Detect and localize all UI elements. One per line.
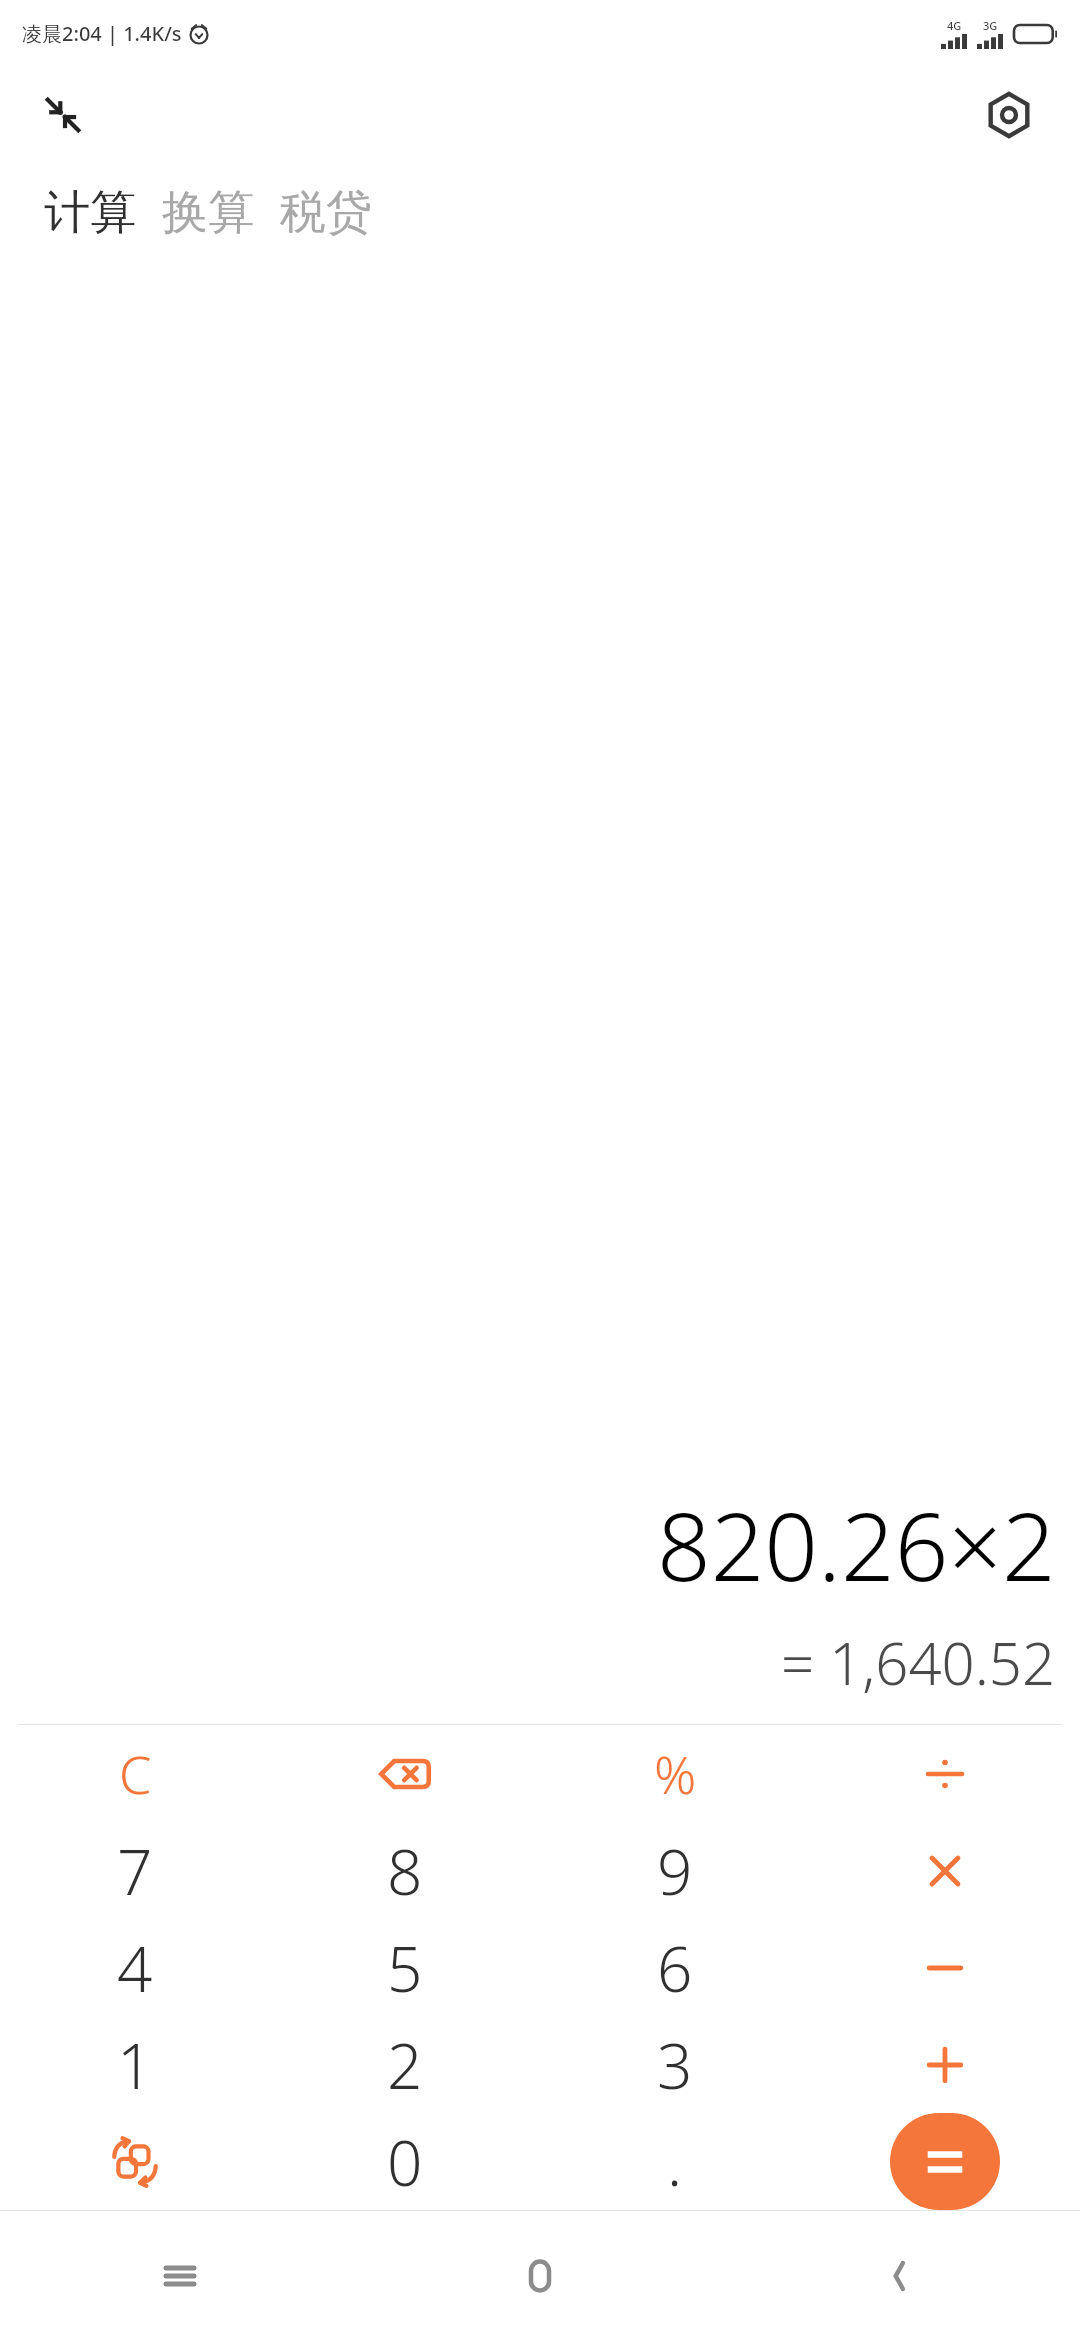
staticText: % [654, 1738, 697, 1809]
staticText: 4G [947, 18, 962, 33]
button[interactable]: Collapse [34, 86, 92, 144]
staticText: . [667, 2120, 683, 2204]
staticText: 5 [387, 1926, 423, 2010]
button[interactable]: 7 [0, 1822, 270, 1919]
button[interactable]: Recents [0, 2211, 360, 2340]
button[interactable]: Home [360, 2211, 720, 2340]
button[interactable]: C [0, 1725, 270, 1822]
staticText: 计算 [44, 184, 136, 242]
staticText: 税贷 [280, 184, 372, 242]
staticText: 凌晨2:04 | 1.4K/s [22, 20, 182, 47]
button[interactable]: 8 [270, 1822, 540, 1919]
staticText: 3G [983, 18, 998, 33]
button[interactable]: Minus [810, 1919, 1080, 2016]
button[interactable]: Backspace [270, 1725, 540, 1822]
staticText: 4 [117, 1926, 153, 2010]
button[interactable]: Equals [810, 2113, 1080, 2210]
staticText: 0 [387, 2120, 423, 2204]
button[interactable]: 5 [270, 1919, 540, 2016]
staticText: 7 [117, 1829, 153, 1913]
staticText: 6 [657, 1926, 693, 2010]
staticText: 2 [387, 2023, 423, 2107]
button[interactable]: 1 [0, 2016, 270, 2113]
button[interactable]: % [540, 1725, 810, 1822]
button[interactable]: 税贷 [280, 178, 372, 248]
staticText: C [119, 1738, 152, 1809]
button[interactable]: 2 [270, 2016, 540, 2113]
button[interactable]: 0 [270, 2113, 540, 2210]
button[interactable]: 计算 [44, 178, 136, 248]
button[interactable]: 换算 [162, 178, 254, 248]
button[interactable]: . [540, 2113, 810, 2210]
staticText: 9 [657, 1829, 693, 1913]
button[interactable]: Back [720, 2211, 1080, 2340]
button[interactable]: Convert [0, 2113, 270, 2210]
button[interactable]: 3 [540, 2016, 810, 2113]
button[interactable]: 4 [0, 1919, 270, 2016]
button[interactable]: Plus [810, 2016, 1080, 2113]
button[interactable]: Settings [978, 84, 1040, 146]
staticText: 820.26×2 [657, 1481, 1056, 1609]
button[interactable]: 6 [540, 1919, 810, 2016]
button[interactable]: Divide [810, 1725, 1080, 1822]
staticText: = 1,640.52 [781, 1623, 1056, 1702]
button[interactable]: Multiply [810, 1822, 1080, 1919]
staticText: 8 [387, 1829, 423, 1913]
staticText: 3 [657, 2023, 693, 2107]
button[interactable]: 9 [540, 1822, 810, 1919]
staticText: 换算 [162, 184, 254, 242]
staticText: 1 [117, 2023, 153, 2107]
